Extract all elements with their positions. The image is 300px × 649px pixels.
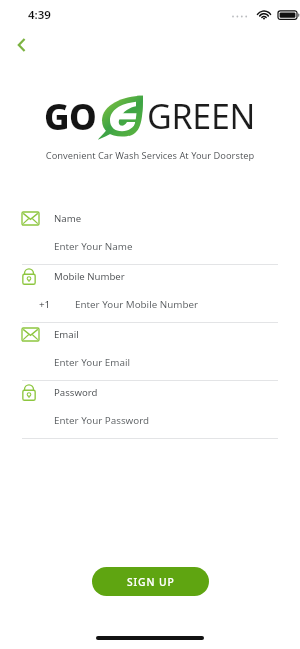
- button[interactable]: SIGN UP: [92, 567, 209, 596]
- staticText: Enter Your Password: [54, 414, 150, 427]
- staticText: Email: [54, 328, 79, 341]
- staticText: SIGN UP: [127, 575, 175, 589]
- staticText: Password: [54, 386, 98, 399]
- staticText: Enter Your Email: [54, 356, 130, 369]
- staticText: GO: [44, 93, 97, 137]
- staticText: Name: [54, 212, 82, 225]
- staticText: 4:39: [28, 7, 51, 23]
- button[interactable]: Name: [0, 207, 300, 265]
- staticText: Enter Your Name: [54, 240, 133, 253]
- staticText: Convenient Car Wash Services At Your Doo…: [0, 149, 300, 162]
- staticText: Mobile Number: [54, 270, 125, 283]
- staticText: +1: [39, 298, 51, 311]
- staticText: Enter Your Mobile Number: [75, 298, 199, 311]
- button[interactable]: Mobile Number: [0, 265, 300, 323]
- button[interactable]: Back: [6, 30, 38, 60]
- button[interactable]: Email: [0, 323, 300, 381]
- staticText: GREEN: [147, 93, 256, 137]
- button[interactable]: Password: [0, 381, 300, 439]
